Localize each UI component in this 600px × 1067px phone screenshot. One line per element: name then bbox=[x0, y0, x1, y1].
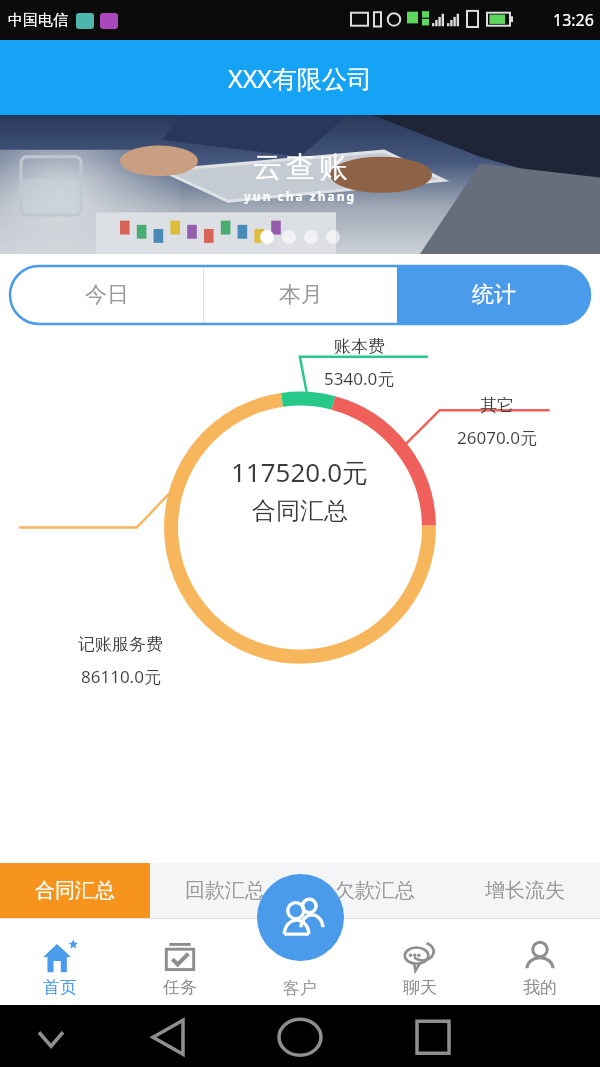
staticText: 客户 bbox=[283, 978, 317, 999]
staticText: 合同汇总 bbox=[252, 496, 348, 526]
staticText: 13:26 bbox=[553, 9, 594, 31]
button[interactable]: 增长流失 bbox=[450, 863, 600, 918]
staticText: 欠款汇总 bbox=[335, 878, 415, 903]
staticText: 26070.0元 bbox=[457, 426, 537, 449]
staticText: 记账服务费 bbox=[78, 634, 163, 655]
staticText: 其它 bbox=[480, 395, 514, 416]
staticText: 我的 bbox=[523, 977, 557, 998]
staticText: 合同汇总 bbox=[35, 878, 115, 903]
staticText: XXX有限公司 bbox=[228, 61, 372, 95]
button[interactable]: 欠款汇总 bbox=[300, 863, 450, 918]
staticText: 本月 bbox=[279, 281, 323, 309]
button[interactable]: 首页 bbox=[0, 918, 120, 1005]
staticText: 云查账 bbox=[251, 149, 350, 186]
button[interactable]: 回款汇总 bbox=[150, 863, 300, 918]
button[interactable]: 本月 bbox=[204, 266, 397, 324]
button[interactable]: 客户 bbox=[257, 874, 344, 961]
staticText: 回款汇总 bbox=[185, 878, 265, 903]
staticText: 任务 bbox=[163, 977, 197, 998]
button[interactable]: 统计 bbox=[397, 266, 590, 324]
button[interactable]: 任务 bbox=[120, 918, 240, 1005]
staticText: yun cha zhang bbox=[244, 188, 357, 204]
staticText: 统计 bbox=[472, 281, 516, 309]
staticText: 86110.0元 bbox=[81, 665, 161, 688]
staticText: 首页 bbox=[43, 977, 77, 998]
button[interactable]: 聊天 bbox=[360, 918, 480, 1005]
staticText: 聊天 bbox=[403, 977, 437, 998]
staticText: 5340.0元 bbox=[324, 367, 395, 390]
button[interactable]: 云查账 bbox=[0, 115, 600, 254]
staticText: 今日 bbox=[85, 281, 129, 309]
staticText: 账本费 bbox=[334, 336, 385, 357]
button[interactable]: 今日 bbox=[10, 266, 203, 324]
staticText: 中国电信 bbox=[8, 11, 68, 30]
button[interactable]: 合同汇总 bbox=[0, 863, 150, 918]
staticText: 增长流失 bbox=[485, 878, 565, 903]
button[interactable]: 我的 bbox=[480, 918, 600, 1005]
staticText: 117520.0元 bbox=[231, 454, 369, 490]
